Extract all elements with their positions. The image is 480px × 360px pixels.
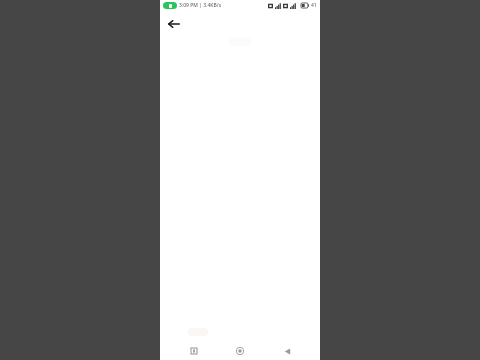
staticText: 3:09 PM | 3.4KB/s <box>179 2 222 9</box>
button[interactable]: Home <box>227 342 253 360</box>
staticText: 41 <box>311 2 317 9</box>
button[interactable]: Back <box>274 342 300 360</box>
button[interactable]: Back <box>164 14 184 34</box>
button[interactable]: Recent apps <box>181 342 207 360</box>
